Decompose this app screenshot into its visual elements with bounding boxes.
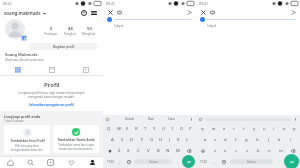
button[interactable]: Threads [79, 8, 89, 18]
button[interactable]: Backspace [286, 145, 299, 156]
button[interactable]: z [209, 145, 220, 156]
button[interactable]: D [127, 134, 137, 145]
button[interactable]: Shift [104, 145, 115, 156]
button[interactable]: M [173, 145, 183, 156]
button[interactable]: Space [230, 159, 273, 164]
button[interactable]: Tambahkan Nama Anda [53, 125, 99, 153]
button[interactable]: J [165, 134, 174, 145]
button[interactable]: X [124, 145, 133, 156]
button[interactable]: v [242, 145, 253, 156]
button[interactable]: Shift [197, 145, 209, 156]
button[interactable]: Clipboard [198, 117, 203, 122]
button[interactable]: ?123 [197, 157, 210, 166]
button[interactable]: S [117, 134, 127, 145]
button[interactable]: Emoji [219, 157, 229, 166]
button[interactable]: Q [104, 123, 114, 134]
button[interactable]: Voice input [189, 117, 194, 122]
button[interactable]: T [141, 123, 150, 134]
button[interactable]: 50 [79, 25, 99, 37]
button[interactable]: Enter [182, 155, 195, 168]
button[interactable]: A [107, 134, 117, 145]
button[interactable]: o [279, 123, 289, 134]
button[interactable]: m [275, 145, 286, 156]
button[interactable]: r [229, 123, 239, 134]
button[interactable]: Backspace [183, 145, 195, 156]
button[interactable]: h [252, 134, 263, 145]
button[interactable]: Send [185, 8, 193, 16]
button[interactable]: w [208, 123, 219, 134]
button[interactable]: t [239, 123, 249, 134]
button[interactable]: R [132, 123, 141, 134]
button[interactable]: q [197, 123, 208, 134]
button[interactable]: Clipboard [105, 117, 110, 122]
staticText: Mengikuti [82, 32, 96, 36]
button[interactable]: p [289, 123, 299, 134]
button[interactable]: Home [0, 157, 20, 168]
button[interactable]: Voice input [293, 117, 298, 122]
button[interactable]: soang.makmuds [4, 9, 46, 17]
button[interactable]: B [153, 145, 163, 156]
button[interactable]: Comma [116, 157, 124, 166]
button[interactable]: I [168, 123, 177, 134]
button[interactable]: e [219, 123, 229, 134]
button[interactable]: Tagged [69, 65, 103, 75]
button[interactable]: N [163, 145, 173, 156]
button[interactable]: d [220, 134, 230, 145]
button[interactable]: Space [134, 159, 172, 164]
button[interactable]: u [259, 123, 269, 134]
staticText: Bahasa [247, 160, 256, 164]
button[interactable]: i [269, 123, 279, 134]
button[interactable]: C [133, 145, 143, 156]
button[interactable]: P [186, 123, 195, 134]
button[interactable]: Attach file [115, 8, 123, 16]
button[interactable]: Bagikan profil [30, 43, 97, 50]
button[interactable]: Reels [40, 157, 61, 168]
button[interactable]: g [241, 134, 252, 145]
button[interactable]: Grid [0, 65, 35, 75]
button[interactable]: L [183, 134, 192, 145]
button[interactable]: Enter [284, 154, 299, 168]
button[interactable]: Profile photo [5, 19, 28, 42]
button[interactable]: G [147, 134, 156, 145]
button[interactable]: a [200, 134, 210, 145]
button[interactable]: s [210, 134, 220, 145]
button[interactable]: E [123, 123, 132, 134]
button[interactable]: Y [150, 123, 159, 134]
button[interactable]: Selesaikan pengaturan profil [28, 102, 75, 108]
staticText: Q [107, 126, 111, 132]
button[interactable]: W [114, 123, 123, 134]
button[interactable]: Tambahkan foto Profil [4, 125, 50, 154]
button[interactable]: Attach file [208, 8, 216, 16]
button[interactable]: Close [106, 8, 114, 16]
button[interactable]: U [159, 123, 168, 134]
button[interactable]: Profile [82, 157, 103, 168]
button[interactable]: y [249, 123, 259, 134]
button[interactable]: Close [199, 8, 207, 16]
button[interactable]: Reels [35, 65, 69, 75]
button[interactable]: Search [20, 157, 40, 168]
button[interactable]: O [177, 123, 186, 134]
button[interactable]: x [220, 145, 231, 156]
button[interactable]: n [264, 145, 275, 156]
button[interactable]: l [285, 134, 296, 145]
button[interactable]: Send [289, 8, 297, 16]
button[interactable]: c [231, 145, 242, 156]
button[interactable]: 48 [61, 25, 79, 37]
button[interactable]: 0 [41, 25, 61, 37]
button[interactable]: Menu [89, 8, 99, 18]
button[interactable]: f [230, 134, 241, 145]
button[interactable]: K [174, 134, 183, 145]
button[interactable]: Z [115, 145, 124, 156]
button[interactable]: Likes [61, 157, 82, 168]
button[interactable]: Comma [210, 157, 219, 166]
button[interactable]: ?123 [104, 157, 116, 166]
button[interactable]: j [263, 134, 274, 145]
button[interactable]: H [156, 134, 165, 145]
button[interactable]: b [253, 145, 264, 156]
button[interactable]: k [274, 134, 285, 145]
button[interactable]: V [143, 145, 153, 156]
button[interactable]: Emoji [124, 157, 133, 166]
button[interactable]: F [137, 134, 147, 145]
